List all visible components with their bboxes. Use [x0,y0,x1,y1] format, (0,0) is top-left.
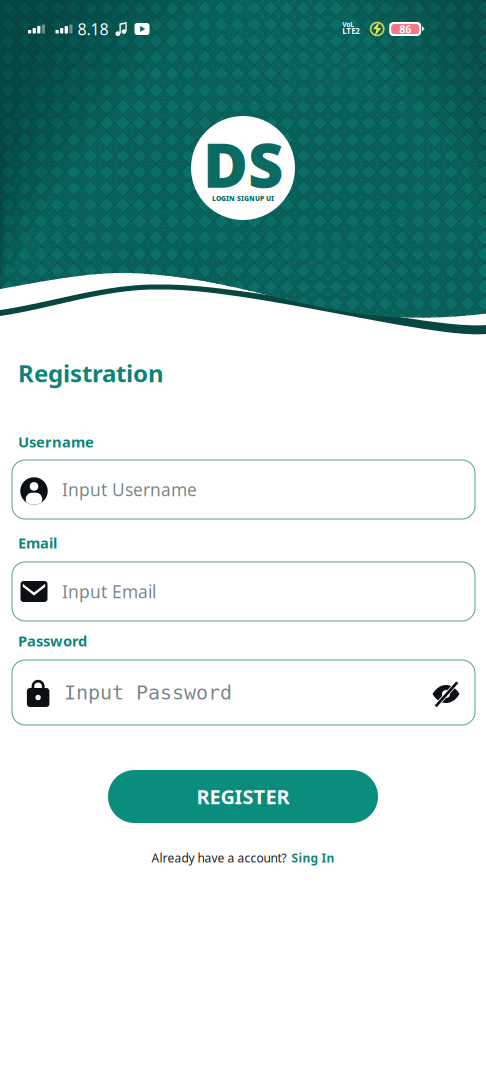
button[interactable]: Input Password [12,660,475,725]
staticText: Username [18,432,94,451]
staticText: Input Email [62,580,156,603]
staticText: LTE2 [342,26,360,36]
staticText: 8.18 [77,18,108,40]
staticText: Input Password [64,681,232,704]
staticText: Input Username [62,478,197,501]
staticText: LOGIN SIGNUP UI [212,194,274,203]
staticText: Sing In [291,850,334,866]
button[interactable]: Sing In [291,850,334,866]
button[interactable]: Input Username [12,460,475,519]
button[interactable]: Input Email [12,562,475,621]
staticText: VoL [342,20,354,29]
staticText: 86 [399,22,411,36]
staticText: Password [18,631,87,650]
staticText: DS [203,123,283,205]
staticText: Email [18,533,57,552]
staticText: REGISTER [196,783,289,810]
staticText: Already have a account? [151,850,286,866]
staticText: Registration [18,357,164,389]
button[interactable]: REGISTER [108,770,378,823]
